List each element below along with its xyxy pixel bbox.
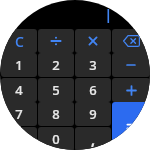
button[interactable]: , [75,127,111,150]
staticText: 1 [15,56,23,74]
button[interactable]: Divide [38,29,74,53]
button[interactable]: 3 [75,53,111,77]
button[interactable]: Percent [1,127,37,150]
button[interactable]: Equals [112,102,150,150]
staticText: 7 [15,105,23,123]
staticText: 8 [52,105,60,123]
button[interactable]: 2 [38,53,74,77]
button[interactable]: 4 [1,78,37,102]
button[interactable]: Plus [112,78,150,102]
button[interactable]: 5 [38,78,74,102]
staticText: % [13,130,25,148]
staticText: 9 [89,105,97,123]
staticText: 0 [52,130,60,148]
button[interactable]: 6 [75,78,111,102]
button[interactable]: Clear [1,29,37,53]
button[interactable]: 7 [1,102,37,126]
button[interactable]: Multiply [75,29,111,53]
button[interactable]: 9 [75,102,111,126]
staticText: 5 [52,81,60,99]
button[interactable]: 1 [1,53,37,77]
staticText: 6 [89,81,97,99]
staticText: 3 [89,56,97,74]
staticText: 4 [15,81,23,99]
button[interactable]: 8 [38,102,74,126]
staticText: , [91,130,95,149]
button[interactable]: Backspace [112,29,150,53]
button[interactable]: Minus [112,53,150,77]
staticText: C [15,32,24,51]
button[interactable]: 0 [38,127,74,150]
staticText: 2 [52,56,60,74]
